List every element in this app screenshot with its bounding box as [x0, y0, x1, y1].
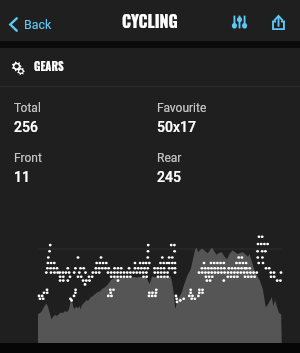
staticText: Back	[24, 17, 52, 32]
button[interactable]: Back	[0, 14, 62, 35]
staticText: 256	[14, 119, 38, 135]
staticText: GEARS	[34, 58, 64, 74]
button[interactable]: GEARS	[0, 48, 300, 86]
staticText: 11	[14, 169, 30, 185]
staticText: Favourite	[157, 101, 207, 115]
staticText: 245	[157, 169, 181, 185]
staticText: 50x17	[157, 119, 196, 135]
staticText: CYCLING	[122, 9, 178, 33]
button[interactable]: Adjust settings	[220, 3, 258, 41]
staticText: Rear	[157, 151, 182, 165]
staticText: Total	[14, 101, 41, 115]
staticText: Front	[14, 151, 42, 165]
button[interactable]: Share	[258, 3, 298, 41]
